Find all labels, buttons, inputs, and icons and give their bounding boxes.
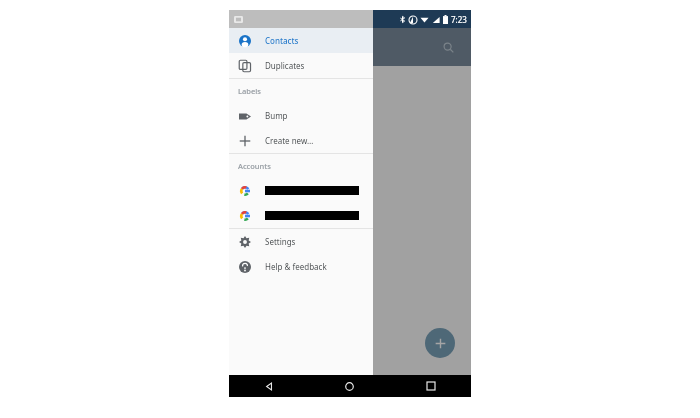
staticText: 7:23	[451, 14, 467, 25]
button[interactable]: Recent apps	[390, 375, 471, 397]
button[interactable]: Duplicates	[229, 53, 373, 78]
button[interactable]	[229, 178, 373, 203]
button[interactable]: Help & feedback	[229, 254, 373, 279]
button[interactable]: Add contact	[425, 328, 455, 358]
button[interactable]	[229, 203, 373, 228]
button[interactable]: Bump	[229, 103, 373, 128]
button[interactable]: Contacts	[229, 28, 373, 53]
button[interactable]: Settings	[229, 229, 373, 254]
staticText: Accounts	[238, 161, 271, 171]
button[interactable]: Home	[309, 375, 390, 397]
staticText: Labels	[238, 86, 261, 96]
staticText: Duplicates	[265, 60, 305, 71]
staticText: Settings	[265, 236, 296, 247]
staticText: Help & feedback	[265, 261, 327, 272]
button[interactable]: Search	[435, 34, 461, 60]
button[interactable]: Back	[229, 375, 309, 397]
staticText: Create new…	[265, 135, 314, 146]
button[interactable]: Create new…	[229, 128, 373, 153]
staticText: Contacts	[265, 35, 299, 46]
staticText: Bump	[265, 110, 288, 121]
